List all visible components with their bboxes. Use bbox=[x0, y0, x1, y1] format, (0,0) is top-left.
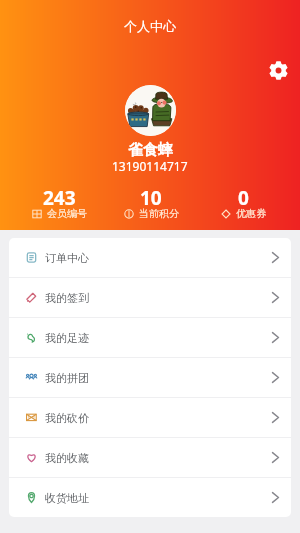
staticText: 收货地址 bbox=[45, 491, 89, 505]
staticText: 订单中心 bbox=[45, 251, 89, 265]
staticText: 会员编号 bbox=[47, 207, 87, 220]
button[interactable]: 订单中心 bbox=[9, 238, 291, 277]
staticText: 个人中心 bbox=[0, 18, 300, 34]
staticText: 243 bbox=[43, 185, 76, 211]
staticText: 0 bbox=[238, 185, 249, 211]
button[interactable]: Profile avatar bbox=[125, 85, 176, 136]
button[interactable]: 10 bbox=[105, 185, 197, 224]
button[interactable]: 我的砍价 bbox=[9, 398, 291, 437]
staticText: 雀食蟀 bbox=[128, 141, 173, 160]
staticText: 13190114717 bbox=[112, 158, 188, 174]
button[interactable]: 我的拼团 bbox=[9, 358, 291, 397]
button[interactable]: 243 bbox=[13, 185, 105, 224]
button[interactable]: 我的签到 bbox=[9, 278, 291, 317]
staticText: 优惠券 bbox=[236, 207, 266, 220]
staticText: 我的砍价 bbox=[45, 411, 89, 425]
staticText: 我的足迹 bbox=[45, 331, 89, 345]
button[interactable]: 我的收藏 bbox=[9, 438, 291, 477]
staticText: 10 bbox=[140, 185, 162, 211]
staticText: 当前积分 bbox=[139, 207, 179, 220]
staticText: 我的收藏 bbox=[45, 451, 89, 465]
button[interactable]: 收货地址 bbox=[9, 478, 291, 517]
staticText: 我的签到 bbox=[45, 291, 89, 305]
button[interactable]: 我的足迹 bbox=[9, 318, 291, 357]
button[interactable]: Settings bbox=[265, 57, 291, 83]
staticText: 我的拼团 bbox=[45, 371, 89, 385]
button[interactable]: 0 bbox=[197, 185, 289, 224]
